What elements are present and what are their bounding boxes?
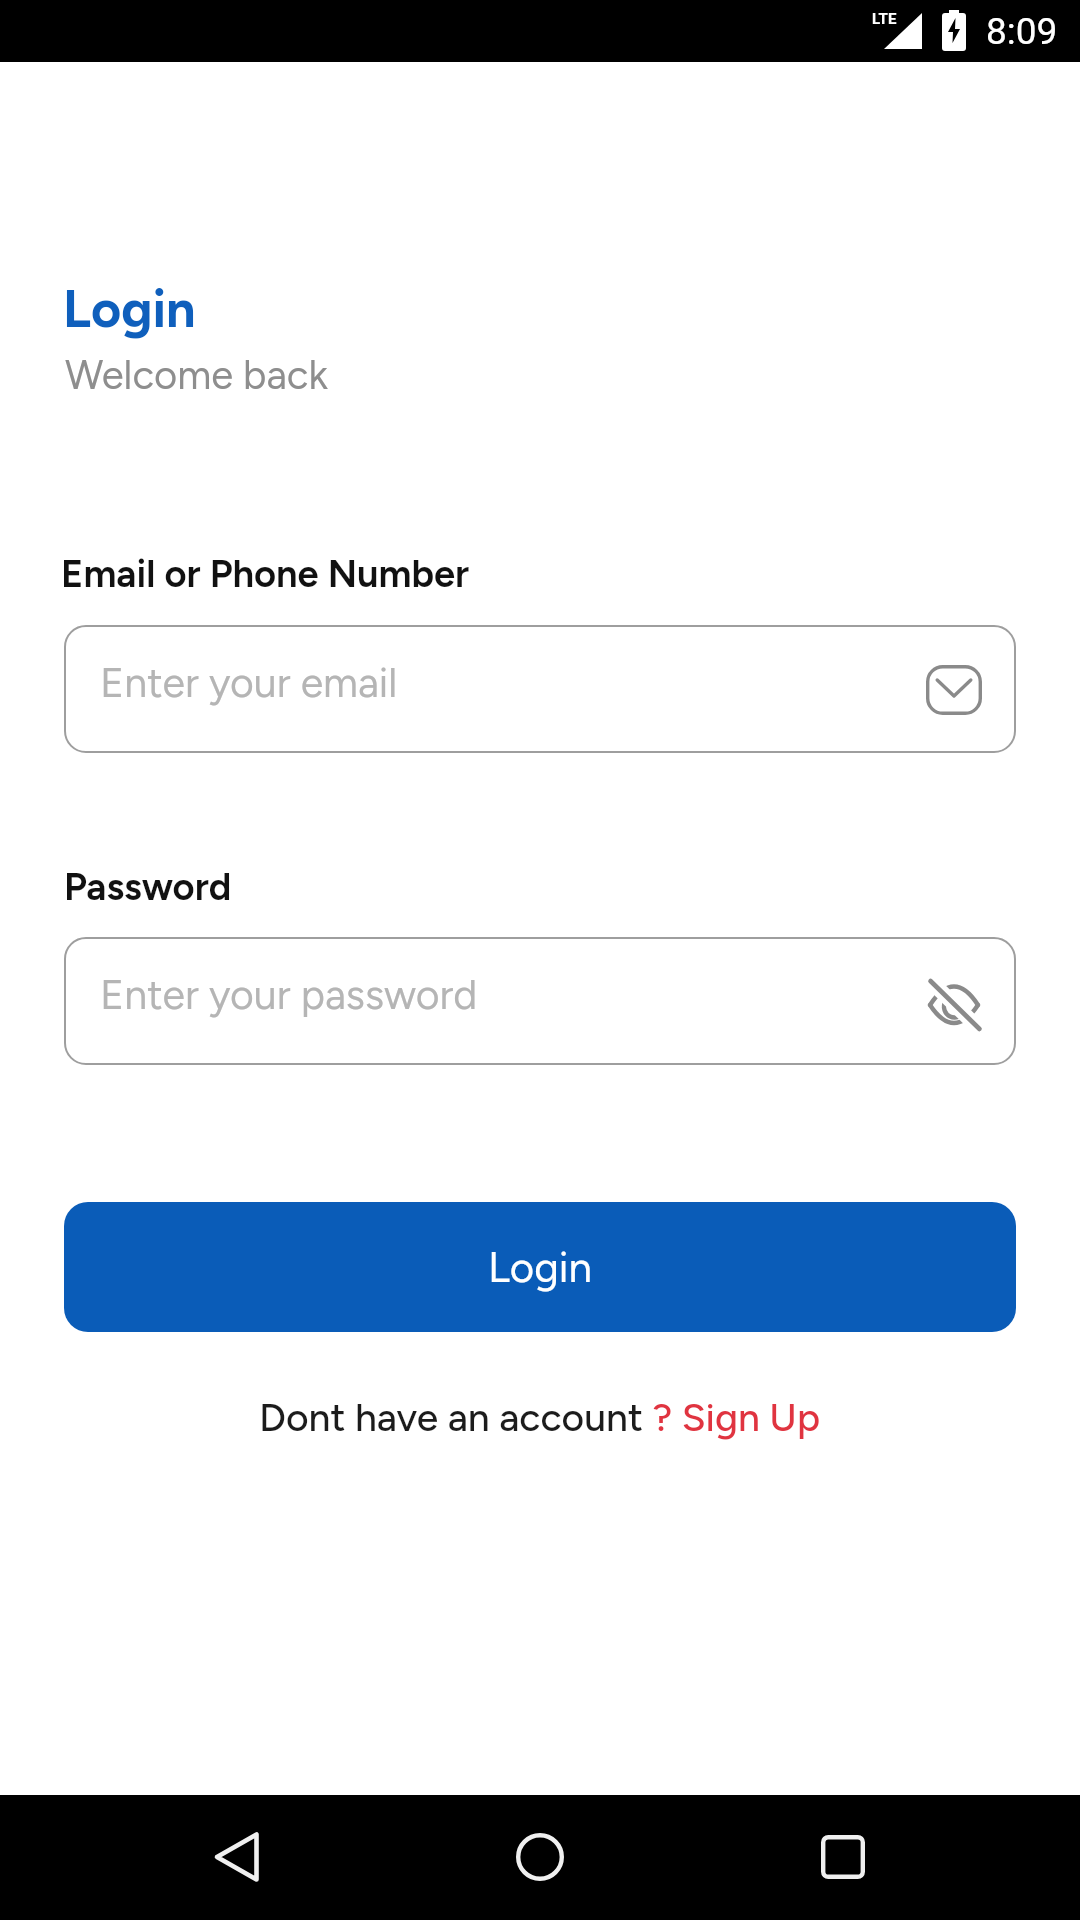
button[interactable]: Login (64, 1202, 1016, 1332)
staticText: 8:09 (986, 10, 1058, 53)
button[interactable]: Dont have an account ? Sign Up (259, 1394, 821, 1441)
button[interactable] (813, 1827, 873, 1887)
staticText: Email or Phone Number (61, 551, 470, 597)
staticText: Enter your password (100, 970, 478, 1019)
button[interactable] (64, 937, 1016, 1065)
button[interactable] (207, 1827, 267, 1887)
staticText: Enter your email (100, 658, 398, 707)
staticText: LTE (872, 10, 897, 28)
staticText: Password (64, 864, 232, 910)
staticText: Welcome back (65, 351, 328, 399)
staticText: Login (63, 278, 196, 340)
button[interactable] (64, 625, 1016, 753)
button[interactable] (510, 1827, 570, 1887)
staticText: Login (488, 1242, 593, 1292)
